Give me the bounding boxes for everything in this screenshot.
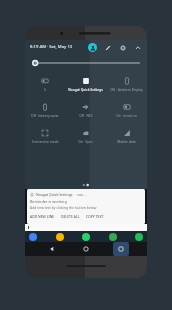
button[interactable]: On · Sync — [65, 123, 106, 149]
staticText: Nougat Quick Settings — [68, 87, 103, 91]
button[interactable]: ON · Ambient Display — [106, 71, 147, 97]
staticText: On · invert co — [116, 113, 137, 117]
button[interactable]: Mobile data — [106, 123, 147, 149]
button[interactable]: Nougat Quick Settings — [65, 71, 106, 97]
button[interactable]: Home — [78, 242, 94, 256]
button[interactable]: Nougat Quick Settings — [27, 189, 145, 224]
staticText: ON · Ambient Display — [110, 87, 143, 91]
button[interactable]: Edit tiles — [103, 43, 112, 52]
staticText: Reminder is working — [30, 199, 67, 204]
button[interactable]: COPY TEXT — [86, 214, 110, 219]
button[interactable]: Brightness — [31, 58, 141, 68]
staticText: DELETE ALL — [61, 214, 80, 219]
button[interactable]: App — [135, 233, 143, 241]
button[interactable]: Off · NFC — [65, 97, 106, 123]
button[interactable]: Power — [133, 43, 142, 52]
button[interactable]: Back — [44, 242, 60, 256]
staticText: 8:19 AM · Sat, May 13 — [30, 44, 73, 50]
button[interactable]: App — [82, 233, 90, 241]
button[interactable]: Settings — [118, 43, 127, 52]
staticText: Add new text by clicking the button belo… — [30, 205, 97, 210]
staticText: COPY TEXT — [86, 214, 104, 219]
staticText: Off · NFC — [79, 113, 93, 117]
button[interactable]: App — [29, 233, 37, 241]
button[interactable]: DELETE ALL — [61, 214, 86, 219]
button[interactable]: App — [109, 233, 117, 241]
staticText: ADD NEW LINE — [30, 214, 55, 219]
button[interactable]: ADD NEW LINE — [30, 214, 61, 219]
staticText: Off · battery saver — [31, 113, 59, 117]
staticText: · now ⌄ — [75, 193, 87, 197]
staticText: On · Sync — [78, 139, 93, 143]
button[interactable]: On · invert co — [106, 97, 147, 123]
staticText: li — [44, 87, 46, 91]
button[interactable]: li — [25, 71, 65, 97]
button[interactable]: Recents — [113, 242, 129, 256]
staticText: Nougat Quick Settings — [36, 192, 73, 197]
button[interactable]: App — [56, 233, 64, 241]
button[interactable]: Off · battery saver — [25, 97, 65, 123]
button[interactable]: Account — [88, 43, 97, 52]
staticText: Mobile data — [117, 139, 136, 143]
button[interactable]: Immersive mode — [25, 123, 65, 149]
staticText: Immersive mode — [32, 139, 59, 143]
